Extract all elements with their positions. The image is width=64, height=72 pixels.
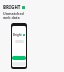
- button[interactable]: BRIGHT: [3, 4, 25, 10]
- staticText: Bright: [13, 33, 22, 37]
- button[interactable]: [12, 62, 26, 66]
- staticText: Unmatched web data: [3, 11, 24, 20]
- staticText: BRIGHT: [3, 4, 21, 10]
- button[interactable]: [12, 56, 26, 60]
